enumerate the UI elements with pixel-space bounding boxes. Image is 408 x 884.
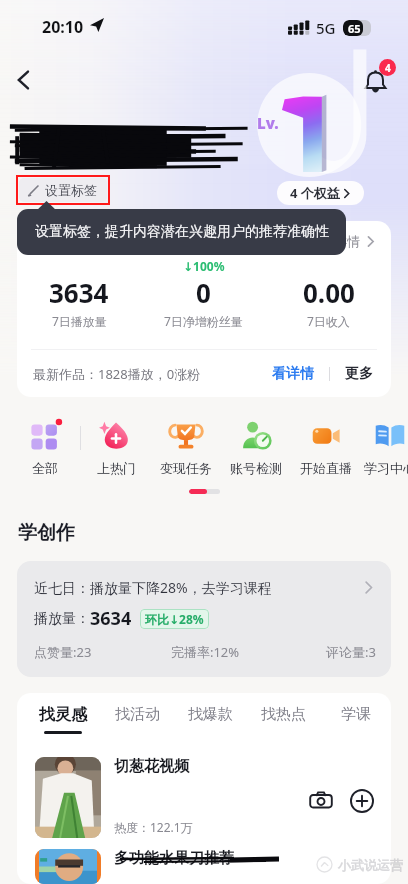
staticText: 设置标签 bbox=[45, 182, 97, 198]
button[interactable]: 找活动 bbox=[100, 705, 174, 730]
staticText: 播放量： bbox=[34, 610, 90, 628]
staticText: 评论量:3 bbox=[262, 643, 376, 661]
staticText: ↓100% bbox=[183, 258, 225, 274]
staticText: 0 bbox=[196, 275, 211, 310]
button[interactable]: 找热点 bbox=[247, 705, 320, 730]
button[interactable]: 设置标签 bbox=[19, 178, 107, 202]
button[interactable]: 切葱花视频 bbox=[17, 746, 391, 838]
button[interactable]: 学习中心 bbox=[361, 416, 408, 480]
button[interactable]: 开始直播 bbox=[291, 416, 361, 480]
staticText: 找热点 bbox=[261, 705, 306, 724]
staticText: 找爆款 bbox=[188, 705, 233, 724]
staticText: 环比↓28% bbox=[145, 611, 204, 627]
staticText: 设置标签，提升内容潜在兴趣用户的推荐准确性 bbox=[35, 223, 329, 241]
staticText: 65 bbox=[348, 21, 361, 36]
staticText: 开始直播 bbox=[300, 460, 352, 476]
staticText: 最新作品：1828播放，0涨粉 bbox=[33, 365, 201, 383]
button[interactable]: 找爆款 bbox=[174, 705, 247, 730]
button[interactable]: 全部 bbox=[10, 416, 80, 480]
button[interactable]: 学课 bbox=[320, 705, 391, 730]
button[interactable]: 更多 bbox=[343, 359, 375, 389]
staticText: 4 个权益 bbox=[290, 184, 340, 202]
button[interactable]: 上热门 bbox=[81, 416, 151, 480]
staticText: Lv. bbox=[257, 113, 279, 133]
button[interactable]: 近七日：播放量下降28%，去学习课程 bbox=[17, 561, 391, 677]
staticText: 数据详情 bbox=[308, 233, 360, 249]
staticText: 找活动 bbox=[115, 705, 160, 724]
button[interactable]: 0.00 bbox=[266, 257, 391, 329]
button[interactable]: Add bbox=[346, 785, 378, 817]
button[interactable]: ↓100% bbox=[141, 257, 266, 329]
button[interactable]: 变现任务 bbox=[151, 416, 221, 480]
staticText: 账号检测 bbox=[230, 460, 282, 476]
staticText: 小武说运营 bbox=[338, 857, 403, 873]
staticText: 7日净增粉丝量 bbox=[164, 313, 243, 329]
staticText: 变现任务 bbox=[160, 460, 212, 476]
staticText: 7日收入 bbox=[307, 313, 350, 329]
staticText: 7日播放量 bbox=[52, 313, 107, 329]
button[interactable]: 数据详情 bbox=[17, 221, 391, 261]
staticText: 学习中心 bbox=[364, 460, 408, 476]
staticText: 学创作 bbox=[18, 521, 75, 545]
staticText: 更多 bbox=[345, 365, 373, 383]
staticText: 3634 bbox=[90, 606, 132, 631]
staticText: 点赞量:23 bbox=[34, 643, 148, 661]
button[interactable]: 4 个权益 bbox=[277, 181, 364, 205]
staticText: 看详情 bbox=[272, 365, 314, 383]
staticText: 4 bbox=[385, 61, 391, 75]
staticText: 切葱花视频 bbox=[114, 757, 189, 776]
button[interactable]: Back bbox=[6, 62, 42, 98]
staticText: 多功能水果刀推荐 bbox=[114, 849, 234, 868]
button[interactable]: 多功能水果刀推荐 bbox=[17, 838, 391, 884]
button[interactable]: 3634 bbox=[17, 257, 141, 329]
staticText: 近七日：播放量下降28%，去学习课程 bbox=[34, 578, 272, 597]
staticText: 3634 bbox=[49, 275, 109, 310]
staticText: 上热门 bbox=[97, 460, 136, 476]
staticText: 学课 bbox=[341, 705, 371, 724]
button[interactable]: 看详情 bbox=[270, 359, 316, 389]
button[interactable]: 设置标签，提升内容潜在兴趣用户的推荐准确性 bbox=[17, 209, 346, 255]
staticText: 0.00 bbox=[303, 275, 355, 310]
staticText: 热度：122.1万 bbox=[114, 819, 193, 835]
staticText: 全部 bbox=[32, 460, 58, 476]
staticText: 找灵感 bbox=[39, 705, 87, 725]
staticText: 完播率:12% bbox=[148, 643, 262, 661]
button[interactable]: 找灵感 bbox=[26, 705, 100, 734]
staticText: 5G bbox=[316, 18, 336, 38]
staticText: 20:10 bbox=[42, 16, 84, 38]
button[interactable]: 账号检测 bbox=[221, 416, 291, 480]
button[interactable]: Camera bbox=[305, 785, 337, 817]
button[interactable]: Notifications bbox=[355, 60, 395, 100]
